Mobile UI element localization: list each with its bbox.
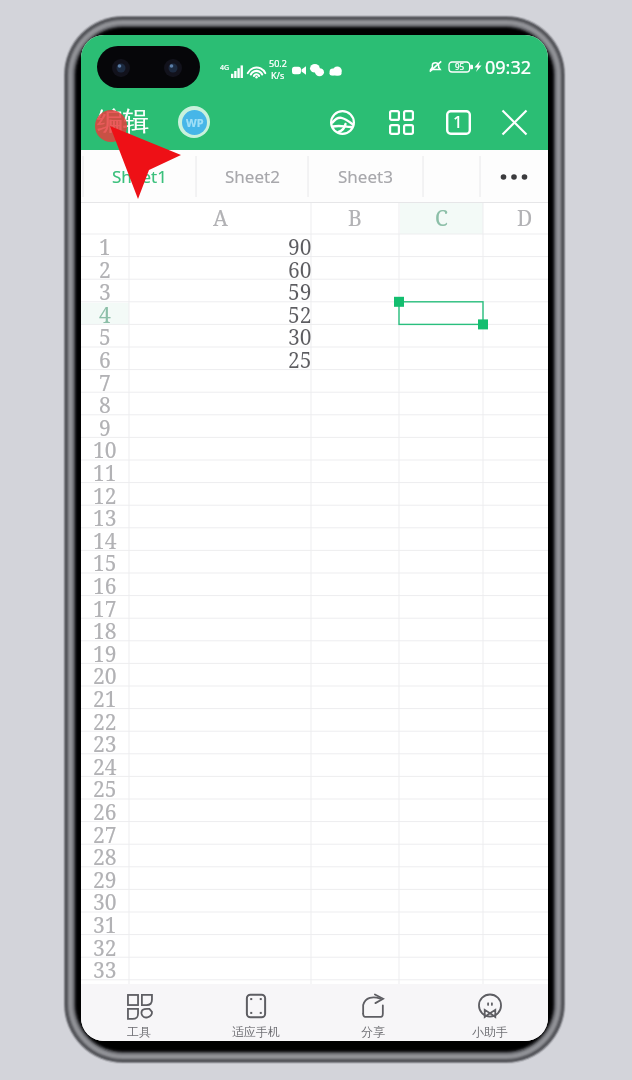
staticText: 3 (99, 278, 111, 301)
button[interactable]: Sheet3 (308, 150, 423, 203)
staticText: 34 (93, 979, 117, 1002)
staticText: 95 (455, 61, 465, 72)
button[interactable]: WPS account (178, 106, 210, 138)
button[interactable]: Close (492, 100, 536, 144)
button[interactable]: Sheet2 (196, 150, 308, 203)
staticText: 分享 (361, 1024, 385, 1039)
staticText: 小助手 (472, 1024, 508, 1039)
staticText: 18 (93, 617, 117, 640)
staticText: 30 (93, 888, 117, 911)
staticText: 工具 (127, 1024, 151, 1039)
staticText: 22 (93, 708, 117, 731)
staticText: Sheet1 (112, 165, 167, 188)
staticText: 20 (93, 662, 117, 685)
staticText: 5 (99, 323, 111, 346)
staticText: 1 (99, 233, 111, 256)
staticText: 26 (93, 798, 117, 821)
staticText: 10 (93, 436, 117, 459)
button[interactable]: 工具 (81, 984, 197, 1041)
staticText: 14 (93, 527, 117, 550)
staticText: 60 (288, 256, 312, 279)
staticText: 30 (288, 323, 312, 346)
staticText: 33 (93, 956, 117, 979)
staticText: 25 (288, 346, 312, 369)
staticText: 29 (93, 866, 117, 889)
staticText: 28 (93, 843, 117, 866)
staticText: 32 (93, 934, 117, 957)
staticText: K/s (271, 69, 285, 79)
staticText: 13 (93, 504, 117, 527)
staticText: 31 (93, 911, 117, 934)
staticText: 适应手机 (232, 1024, 280, 1039)
staticText: C (435, 204, 448, 233)
staticText: A (213, 204, 228, 233)
button[interactable]: 适应手机 (197, 984, 314, 1041)
staticText: 编辑 (97, 105, 149, 138)
staticText: 7 (99, 369, 111, 392)
staticText: 11 (93, 459, 117, 482)
staticText: Sheet2 (225, 165, 280, 188)
button[interactable]: 编辑 (87, 98, 159, 147)
staticText: 15 (93, 549, 117, 572)
staticText: 09:32 (485, 55, 532, 77)
button[interactable]: Apps (379, 100, 423, 144)
staticText: 2 (99, 256, 111, 279)
staticText: 90 (288, 233, 312, 256)
staticText: D (517, 204, 533, 233)
staticText: 4 (99, 301, 111, 324)
staticText: Sheet3 (338, 165, 393, 188)
staticText: 25 (93, 775, 117, 798)
staticText: 8 (99, 391, 111, 414)
button[interactable]: More sheet options (480, 150, 548, 203)
staticText: WP (186, 115, 204, 130)
staticText: 9 (99, 414, 111, 437)
button[interactable]: Sheet1 (83, 150, 196, 203)
staticText: 4G (220, 63, 230, 73)
staticText: 16 (93, 572, 117, 595)
button[interactable]: 分享 (314, 984, 431, 1041)
staticText: 59 (288, 278, 312, 301)
staticText: 6 (99, 346, 111, 369)
staticText: 24 (93, 753, 117, 776)
staticText: B (348, 204, 362, 233)
button[interactable]: Open documents (436, 100, 480, 144)
staticText: 27 (93, 821, 117, 844)
staticText: 12 (93, 482, 117, 505)
staticText: 21 (93, 685, 117, 708)
staticText: 52 (288, 301, 312, 324)
staticText: 19 (93, 640, 117, 663)
staticText: 50.2 (269, 57, 287, 69)
staticText: 17 (93, 595, 117, 618)
staticText: 1 (453, 110, 463, 133)
staticText: 23 (93, 730, 117, 753)
button[interactable]: Reading mode (320, 100, 364, 144)
button[interactable]: 小助手 (431, 984, 548, 1041)
